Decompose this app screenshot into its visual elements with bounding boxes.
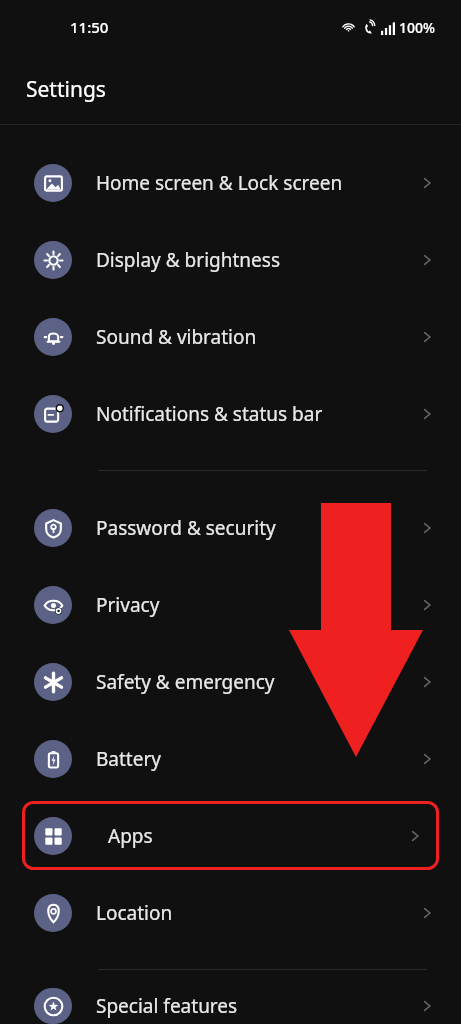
button[interactable]: Sound & vibration — [0, 298, 461, 375]
button[interactable]: Privacy — [0, 566, 461, 643]
staticText: Special features — [96, 993, 238, 1019]
button[interactable]: Safety & emergency — [0, 643, 461, 720]
staticText: Password & security — [96, 515, 276, 541]
staticText: Settings — [26, 75, 106, 104]
staticText: Home screen & Lock screen — [96, 170, 343, 196]
button[interactable]: Battery — [0, 720, 461, 797]
staticText: Apps — [108, 823, 153, 849]
button[interactable]: Notifications & status bar — [0, 375, 461, 452]
staticText: Location — [96, 900, 173, 926]
staticText: Notifications & status bar — [96, 401, 323, 427]
button[interactable]: Apps — [22, 801, 439, 870]
button[interactable]: Location — [0, 874, 461, 951]
button[interactable]: Display & brightness — [0, 221, 461, 298]
button[interactable]: Home screen & Lock screen — [0, 144, 461, 221]
staticText: Battery — [96, 746, 161, 772]
button[interactable]: Password & security — [0, 489, 461, 566]
other: Apps highlighted — [22, 801, 439, 870]
button[interactable]: Special features — [0, 988, 461, 1024]
staticText: Safety & emergency — [96, 669, 275, 695]
staticText: Privacy — [96, 592, 160, 618]
staticText: Sound & vibration — [96, 324, 257, 350]
staticText: 11:50 — [70, 17, 109, 37]
staticText: 100% — [399, 18, 435, 37]
staticText: Display & brightness — [96, 247, 280, 273]
